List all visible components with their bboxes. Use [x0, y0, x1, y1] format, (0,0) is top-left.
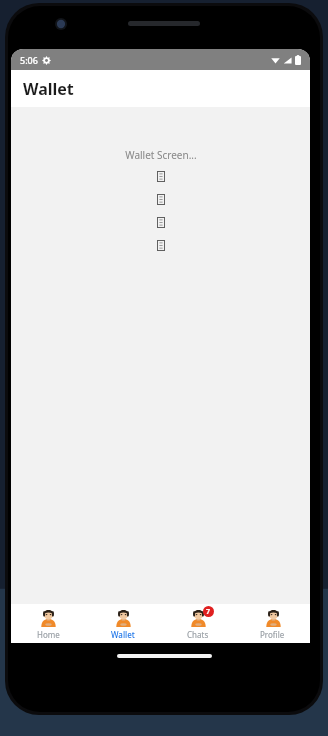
- button[interactable]: Home: [11, 604, 85, 643]
- staticText: Wallet: [23, 78, 74, 100]
- button[interactable]: 7: [160, 604, 235, 643]
- staticText: Wallet: [111, 629, 135, 640]
- staticText: Wallet Screen...: [125, 148, 197, 162]
- button[interactable]: Wallet: [85, 604, 160, 643]
- button[interactable]: Profile: [235, 604, 310, 643]
- staticText: Profile: [260, 629, 285, 640]
- staticText: Home: [37, 629, 60, 640]
- staticText: Chats: [187, 629, 209, 640]
- staticText: 5:06: [20, 54, 38, 66]
- staticText: 7: [206, 607, 211, 617]
